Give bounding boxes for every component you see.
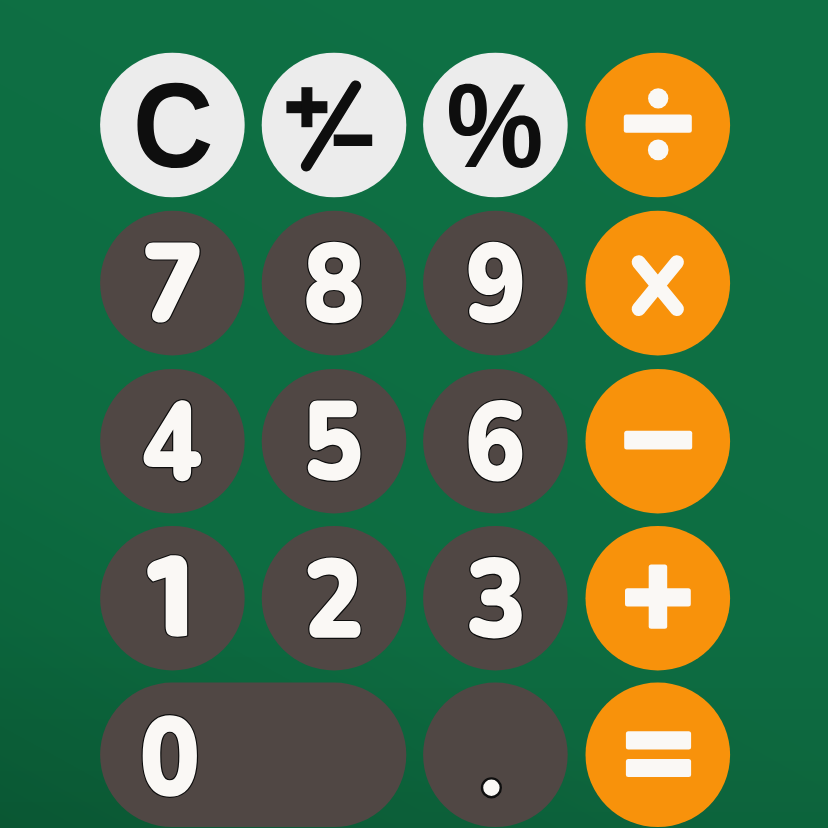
button[interactable]: 3 bbox=[423, 526, 568, 671]
button[interactable]: Clear bbox=[100, 53, 245, 198]
button[interactable]: Divide bbox=[586, 53, 731, 198]
button[interactable]: Plus or minus bbox=[262, 53, 407, 198]
button[interactable]: 9 bbox=[423, 211, 568, 356]
button[interactable]: 1 bbox=[100, 526, 245, 671]
button[interactable]: 7 bbox=[100, 211, 245, 356]
button[interactable]: Add bbox=[586, 526, 731, 671]
button[interactable]: 8 bbox=[262, 211, 407, 356]
button[interactable]: 4 bbox=[100, 369, 245, 514]
button[interactable]: 0 bbox=[100, 683, 406, 828]
button[interactable]: Decimal point bbox=[423, 683, 568, 828]
button[interactable]: Equals bbox=[586, 683, 731, 828]
button[interactable]: Multiply bbox=[586, 211, 731, 356]
button[interactable]: Percent bbox=[423, 53, 568, 198]
button[interactable]: 2 bbox=[262, 526, 407, 671]
button[interactable]: 6 bbox=[423, 369, 568, 514]
button[interactable]: Subtract bbox=[586, 369, 731, 514]
button[interactable]: 5 bbox=[262, 369, 407, 514]
